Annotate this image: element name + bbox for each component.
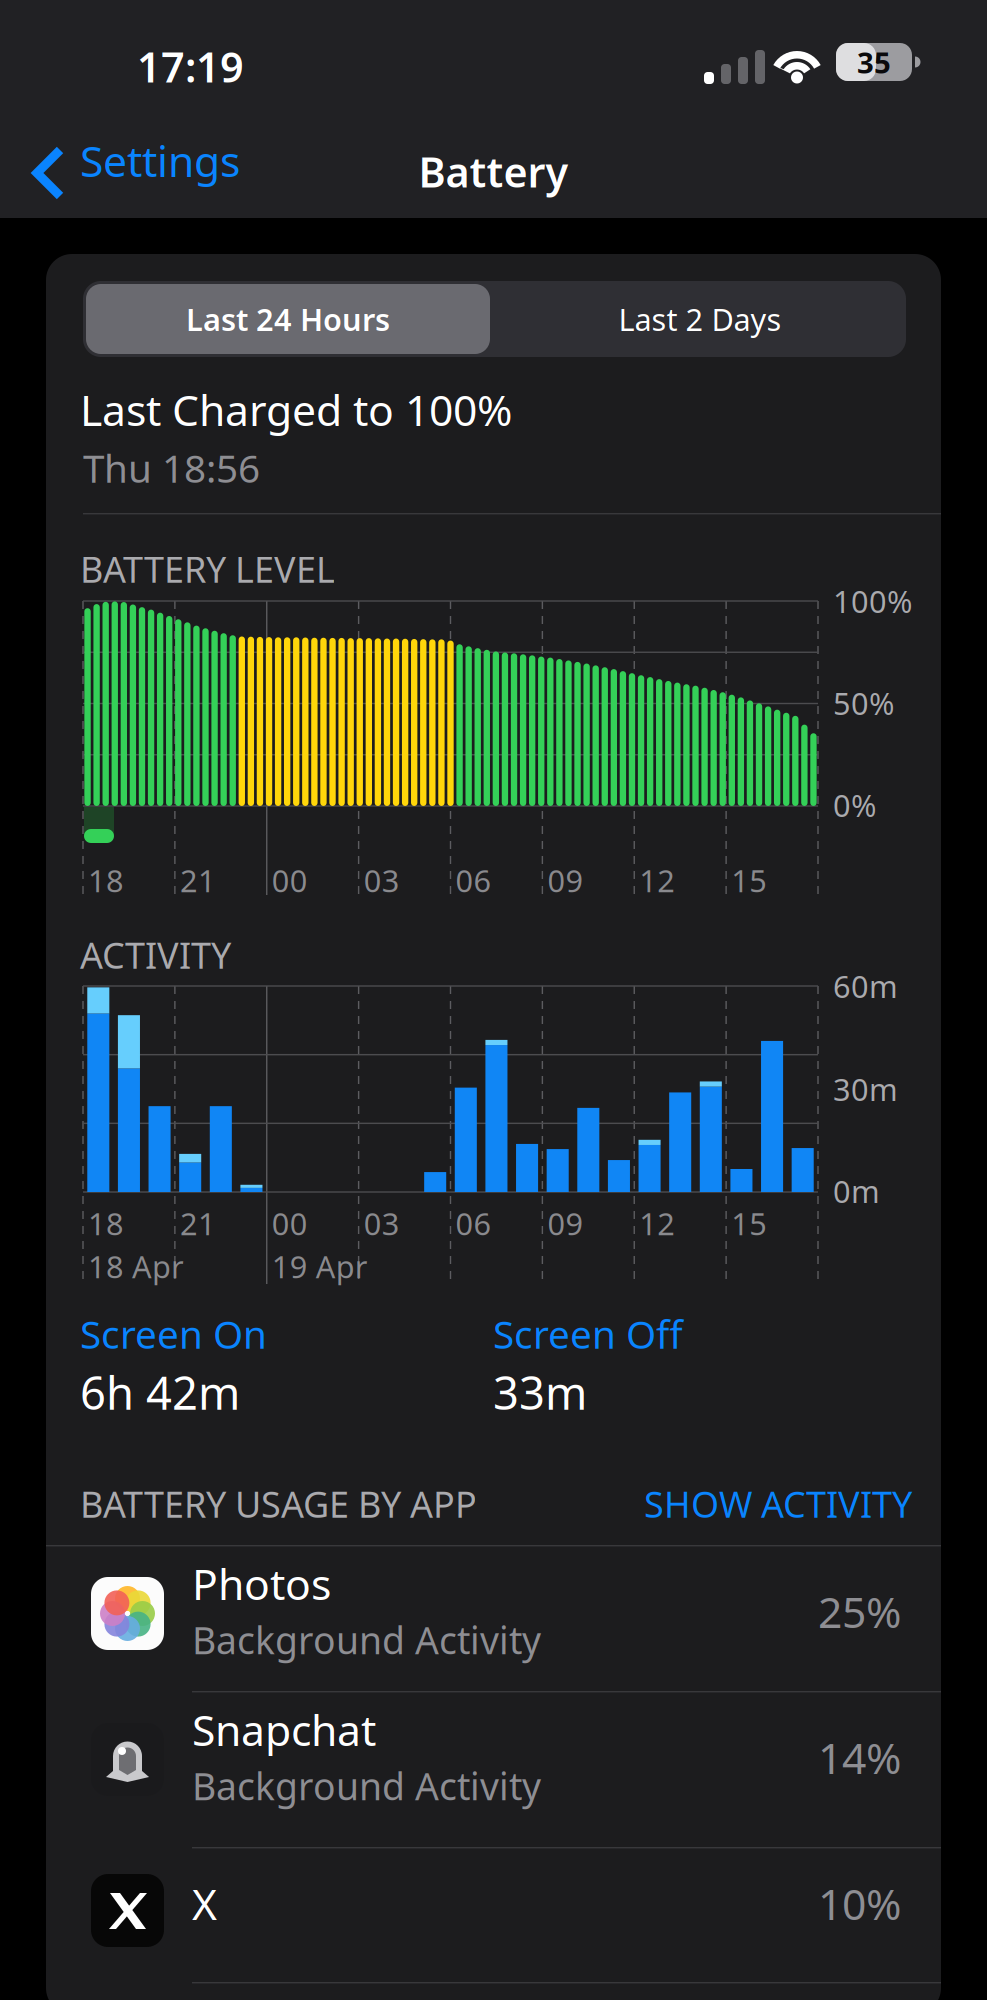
button[interactable]: Screen On	[80, 1308, 460, 1428]
button[interactable]: Screen Off	[493, 1308, 873, 1428]
staticText: 00	[272, 1203, 308, 1244]
staticText: Battery	[418, 144, 568, 199]
staticText: Last 2 Days	[618, 299, 781, 339]
staticText: 6h 42m	[80, 1362, 240, 1422]
staticText: 00	[272, 860, 308, 901]
staticText: Last Charged to 100%	[80, 381, 512, 438]
staticText: 03	[364, 860, 400, 901]
button[interactable]: SHOW ACTIVITY	[644, 1480, 912, 1528]
staticText: Background Activity	[192, 1761, 541, 1811]
staticText: ACTIVITY	[80, 931, 231, 979]
button[interactable]: X	[46, 1847, 941, 1993]
staticText: 12	[639, 1203, 675, 1244]
staticText: 33m	[493, 1362, 587, 1422]
staticText: X	[192, 1875, 217, 1932]
button[interactable]: Photos	[46, 1545, 941, 1691]
staticText: Settings	[80, 132, 240, 189]
staticText: 50%	[833, 683, 894, 723]
staticText: Screen Off	[493, 1308, 683, 1359]
staticText: 60m	[833, 966, 898, 1006]
button[interactable]: Last 24 Hours	[86, 284, 490, 354]
staticText: 15	[731, 1203, 767, 1244]
staticText: 0%	[833, 785, 876, 825]
staticText: SHOW ACTIVITY	[644, 1480, 912, 1528]
staticText: 18 Apr	[88, 1246, 184, 1287]
staticText: 19 Apr	[272, 1246, 368, 1287]
staticText: 09	[547, 1203, 583, 1244]
staticText: Snapchat	[192, 1701, 376, 1758]
staticText: 35	[857, 42, 891, 81]
button[interactable]: Settings	[0, 143, 250, 225]
staticText: 18	[88, 860, 124, 901]
staticText: 18	[88, 1203, 124, 1244]
button[interactable]: Snapchat	[46, 1691, 941, 1837]
staticText: 06	[455, 1203, 491, 1244]
staticText: 06	[455, 860, 491, 901]
staticText: 21	[180, 1203, 216, 1244]
staticText: Last 24 Hours	[186, 299, 390, 339]
staticText: 100%	[833, 581, 912, 621]
staticText: Photos	[192, 1555, 331, 1612]
staticText: BATTERY USAGE BY APP	[80, 1480, 477, 1528]
staticText: BATTERY LEVEL	[80, 545, 335, 593]
staticText: 09	[547, 860, 583, 901]
staticText: 0m	[833, 1171, 880, 1211]
staticText: 03	[364, 1203, 400, 1244]
staticText: 25%	[818, 1583, 901, 1640]
staticText: 10%	[818, 1875, 901, 1932]
button[interactable]	[83, 281, 906, 357]
staticText: Thu 18:56	[83, 442, 260, 493]
staticText: 17:19	[137, 39, 244, 94]
staticText: 12	[639, 860, 675, 901]
staticText: 21	[180, 860, 216, 901]
staticText: 15	[731, 860, 767, 901]
staticText: Screen On	[80, 1308, 267, 1359]
staticText: Background Activity	[192, 1615, 541, 1665]
staticText: 30m	[833, 1069, 898, 1109]
button[interactable]: Last 2 Days	[498, 284, 902, 354]
staticText: 14%	[818, 1729, 901, 1786]
